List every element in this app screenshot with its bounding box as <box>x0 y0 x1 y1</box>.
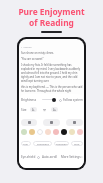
button[interactable]: Brightness <box>21 97 56 102</box>
staticText: Thin <box>23 142 29 145</box>
staticText: Pure Enjoyment <box>18 6 85 17</box>
button[interactable]: Theme colour 2 <box>29 129 35 135</box>
button[interactable]: Thin <box>21 141 31 146</box>
button[interactable]: Page turn style 2 <box>43 119 60 126</box>
button[interactable]: Droidsans <box>33 141 52 146</box>
button[interactable]: Theme colour 6 <box>61 129 67 135</box>
staticText: Serif <box>74 142 80 145</box>
button[interactable]: Theme colour 8 <box>77 129 83 135</box>
staticText: 1 Chapter <box>21 46 32 49</box>
button[interactable]: Line spacing <box>42 108 46 112</box>
staticText: Size <box>21 108 27 112</box>
staticText: Sun shone on misty climes. <box>21 51 54 55</box>
button[interactable]: More Settings › <box>61 155 83 159</box>
button[interactable]: Serif <box>71 141 83 146</box>
button[interactable]: Droidserif <box>54 141 69 146</box>
button[interactable]: Eye-shield <box>21 155 40 159</box>
staticText: Brightness <box>21 98 37 102</box>
button[interactable]: Theme colour 5 <box>53 129 59 135</box>
button[interactable]: Auto-scroll <box>42 155 58 159</box>
staticText: Follow system <box>63 98 83 102</box>
button[interactable]: Theme colour 3 <box>37 129 43 135</box>
staticText: Droidserif <box>56 142 68 145</box>
staticText: A+ <box>53 108 57 112</box>
staticText: “You are so sweet” <box>21 57 44 61</box>
button[interactable]: Theme colour 7 <box>69 129 75 135</box>
staticText: A- <box>32 108 35 112</box>
staticText: Droidsans <box>37 142 49 145</box>
button[interactable]: A+ <box>51 107 58 112</box>
button[interactable]: Follow system <box>59 98 83 102</box>
staticText: of Reading <box>29 17 74 28</box>
button[interactable]: Page turn style 3 <box>66 119 83 126</box>
button[interactable]: Page turn style 1 <box>21 119 37 126</box>
button[interactable]: A- <box>30 107 37 112</box>
staticText: this is my boyfriend. — This is the pers… <box>21 85 83 93</box>
staticText: I shook my fists. It felt like something… <box>21 63 83 83</box>
button[interactable]: Theme colour 1 <box>21 129 27 135</box>
button[interactable]: Theme colour 4 <box>45 129 51 135</box>
other: Earpiece <box>41 31 62 33</box>
staticText: Eye-shield <box>21 155 36 159</box>
